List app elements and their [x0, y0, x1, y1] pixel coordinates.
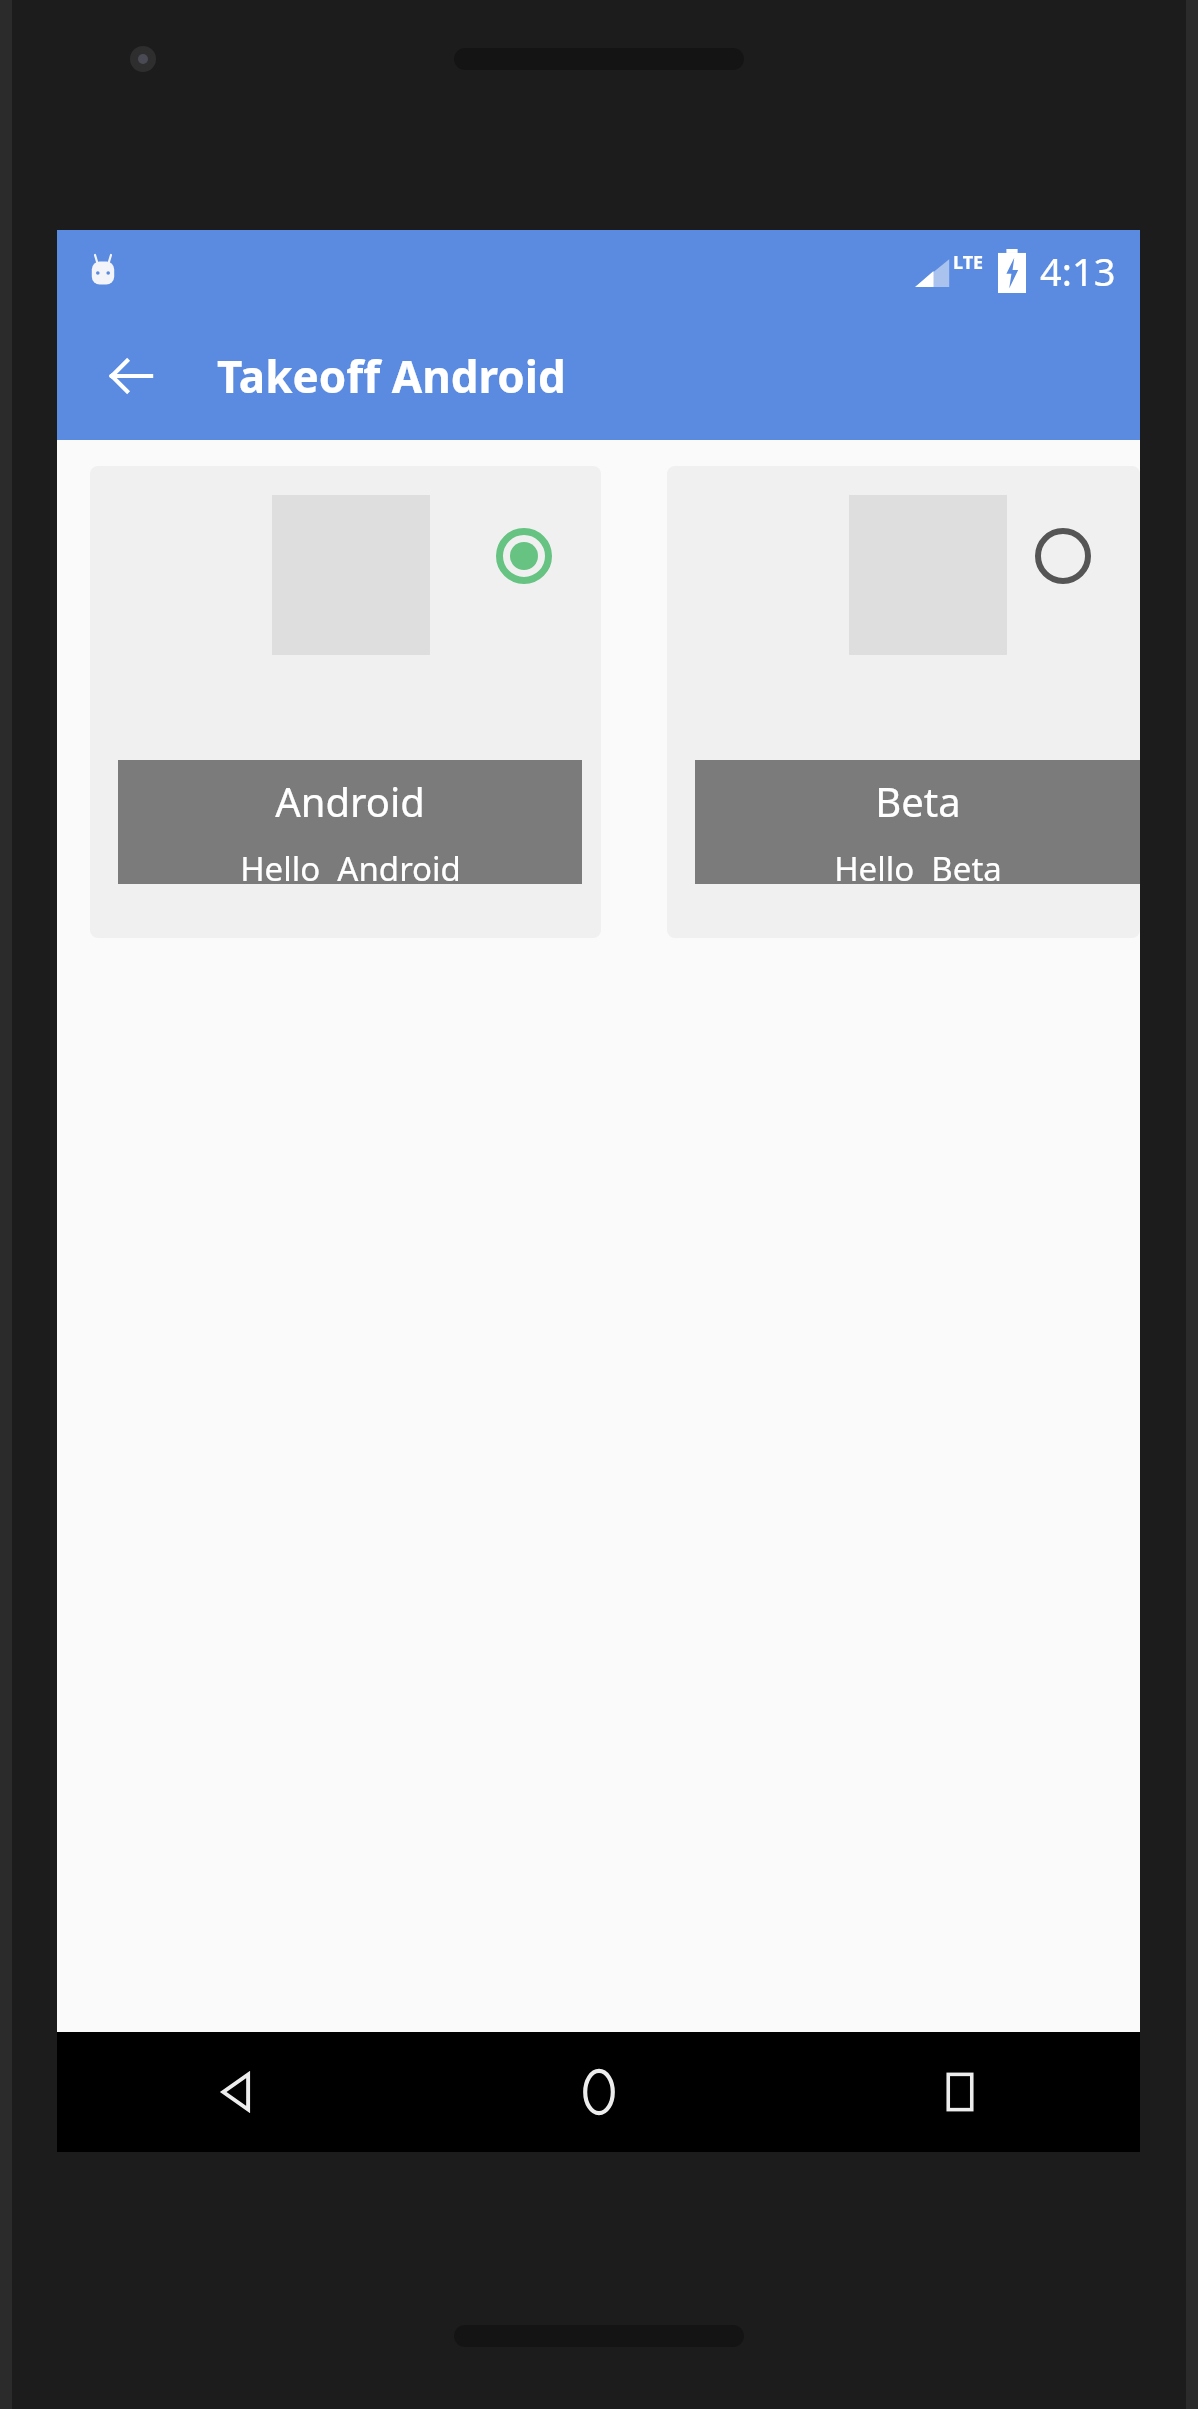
button[interactable]: Not selected — [1033, 526, 1093, 586]
button[interactable]: Back — [57, 2032, 418, 2152]
staticText: Android — [275, 774, 425, 828]
button[interactable]: Home — [418, 2032, 779, 2152]
staticText: Takeoff Android — [217, 346, 566, 406]
button[interactable]: Not selected — [667, 466, 1140, 938]
button[interactable]: Selected — [494, 526, 554, 586]
staticText: 4:13 — [1040, 245, 1116, 297]
staticText: Hello Beta — [834, 846, 1002, 884]
staticText: LTE — [953, 250, 984, 275]
staticText: Hello Android — [240, 846, 461, 884]
button[interactable]: Selected — [90, 466, 601, 938]
staticText: Beta — [875, 774, 961, 828]
button[interactable]: Recents — [779, 2032, 1140, 2152]
button[interactable]: Back — [93, 338, 169, 414]
